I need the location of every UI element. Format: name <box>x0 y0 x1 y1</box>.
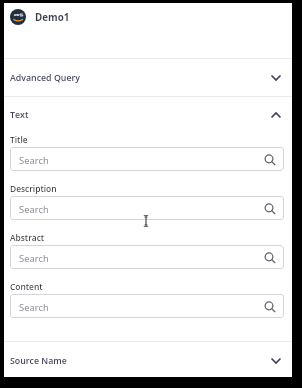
staticText: Source Name <box>10 355 67 367</box>
button[interactable]: Text <box>4 97 292 131</box>
staticText: Search <box>19 203 49 216</box>
staticText: Demo1 <box>35 11 70 24</box>
staticText: Advanced Query <box>10 72 80 84</box>
staticText: Search <box>19 154 49 167</box>
button[interactable]: Search <box>10 196 284 220</box>
staticText: Text <box>10 109 29 121</box>
staticText: Abstract <box>10 232 45 243</box>
button[interactable]: AWS logo <box>4 3 292 58</box>
button[interactable]: Search <box>10 147 284 171</box>
button[interactable]: Source Name <box>4 342 292 377</box>
button[interactable]: Search <box>10 294 284 318</box>
staticText: Search <box>19 252 49 265</box>
button[interactable]: Search <box>10 245 284 269</box>
staticText: Search <box>19 301 49 314</box>
staticText: Title <box>10 134 28 145</box>
other: AWS logo <box>10 9 26 25</box>
staticText: Description <box>10 183 57 194</box>
staticText: Content <box>10 281 43 292</box>
button[interactable]: Advanced Query <box>4 59 292 96</box>
